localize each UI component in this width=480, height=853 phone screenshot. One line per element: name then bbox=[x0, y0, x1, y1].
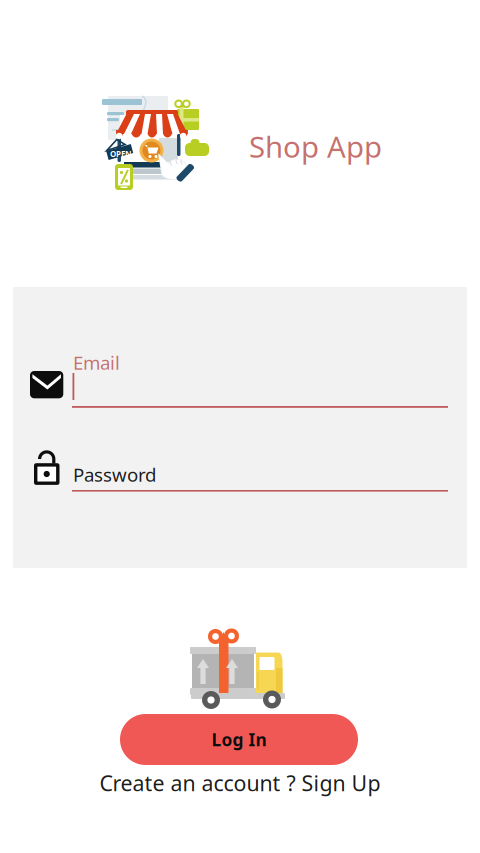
button[interactable]: Log In bbox=[120, 714, 358, 765]
staticText: OPEN bbox=[110, 148, 132, 159]
staticText: Log In bbox=[211, 728, 266, 751]
staticText: Password bbox=[73, 462, 156, 487]
staticText: Create an account ? Sign Up bbox=[99, 769, 380, 797]
staticText: Shop App bbox=[249, 127, 382, 166]
button[interactable]: Create an account ? Sign Up bbox=[95, 769, 385, 797]
staticText: Email bbox=[73, 350, 120, 375]
